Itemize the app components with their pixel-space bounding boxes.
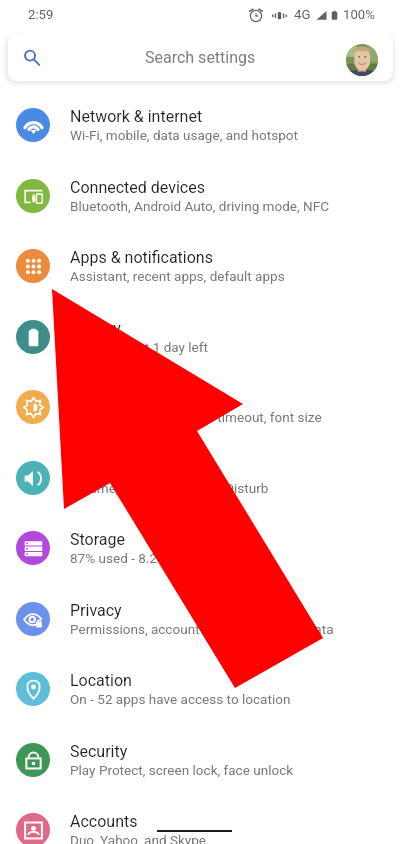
button[interactable]: Battery <box>0 302 400 373</box>
staticText: Apps & notifications <box>70 248 400 267</box>
button[interactable]: Sound <box>0 443 400 514</box>
staticText: Battery <box>70 319 400 338</box>
button[interactable]: Apps & notifications <box>0 231 400 302</box>
staticText: Permissions, account activity, personal … <box>70 621 400 637</box>
staticText: Volume, vibration, Do Not Disturb <box>70 480 400 496</box>
staticText: 4G <box>294 7 311 22</box>
staticText: Storage <box>70 530 400 549</box>
staticText: 2:59 <box>28 7 54 22</box>
staticText: Accounts <box>70 812 400 831</box>
staticText: Sound <box>70 460 400 479</box>
staticText: Wi-Fi, mobile, data usage, and hotspot <box>70 127 400 143</box>
staticText: Bluetooth, Android Auto, driving mode, N… <box>70 198 400 214</box>
button[interactable]: Accounts <box>0 795 400 844</box>
button[interactable]: Connected devices <box>0 161 400 232</box>
staticText: Security <box>70 742 400 761</box>
staticText: Play Protect, screen lock, face unlock <box>70 762 400 778</box>
button[interactable]: Storage <box>0 513 400 584</box>
staticText: Search settings <box>145 48 256 67</box>
staticText: 100% <box>343 7 375 22</box>
staticText: Wallpaper, sleep, screen timeout, font s… <box>70 409 400 425</box>
staticText: Network & internet <box>70 107 400 126</box>
staticText: Duo, Yahoo, and Skype <box>70 832 400 844</box>
other: Search <box>22 48 42 68</box>
staticText: 100% - About 1 day left <box>70 339 400 355</box>
button[interactable]: Display <box>0 372 400 443</box>
staticText: Display <box>70 389 400 408</box>
button[interactable]: Search <box>8 34 393 81</box>
staticText: Privacy <box>70 601 400 620</box>
staticText: Assistant, recent apps, default apps <box>70 268 400 284</box>
button[interactable]: Account <box>346 44 378 76</box>
button[interactable]: Security <box>0 725 400 796</box>
staticText: Connected devices <box>70 178 400 197</box>
button[interactable]: Privacy <box>0 584 400 655</box>
staticText: 87% used - 8.2 GB free <box>70 550 400 566</box>
staticText: On - 52 apps have access to location <box>70 691 400 707</box>
button[interactable]: Network & internet <box>0 90 400 161</box>
staticText: Location <box>70 671 400 690</box>
button[interactable]: Location <box>0 654 400 725</box>
